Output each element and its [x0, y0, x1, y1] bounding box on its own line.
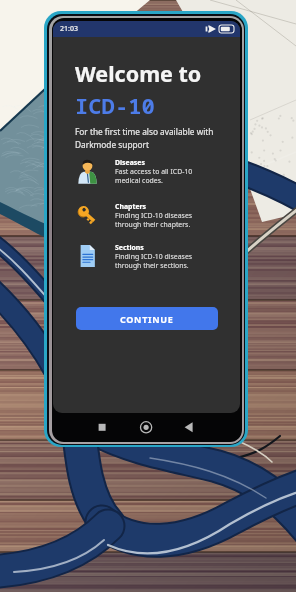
staticText: Finding ICD-10 diseases through their ch… [115, 211, 193, 229]
staticText: CONTINUE [120, 313, 174, 325]
staticText: ICD-10 [75, 90, 155, 120]
staticText: Diseases [115, 158, 145, 167]
staticText: Sections [115, 243, 144, 252]
button[interactable]: CONTINUE [76, 307, 218, 330]
other: Status icons [202, 23, 234, 35]
button[interactable]: Diseases [75, 157, 227, 185]
staticText: Welcome to [75, 59, 202, 88]
staticText: Chapters [115, 202, 147, 211]
staticText: Finding ICD-10 diseases through their se… [115, 252, 193, 270]
button[interactable]: Sections [75, 242, 227, 270]
staticText: For the first time also available with D… [75, 126, 227, 150]
button[interactable]: Chapters [75, 201, 227, 229]
staticText: Fast access to all ICD-10 medical codes. [115, 167, 193, 185]
staticText: 21:03 [60, 24, 78, 34]
